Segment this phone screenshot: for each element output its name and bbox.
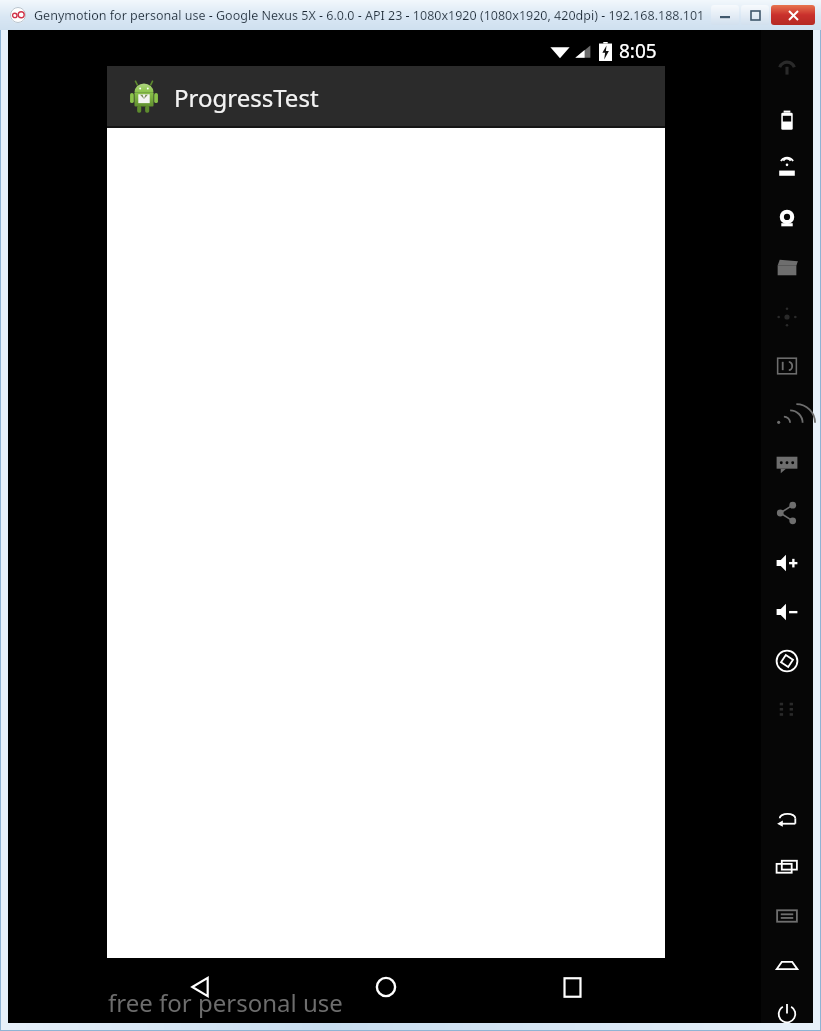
button[interactable]: Recent apps: [479, 958, 665, 1016]
button[interactable]: VOL_DOWN: [771, 596, 803, 628]
staticText: ProgressTest: [174, 81, 319, 114]
button[interactable]: Maximize: [741, 5, 769, 25]
button[interactable]: CAMERA: [771, 202, 803, 234]
button[interactable]: DPAD: [771, 301, 803, 333]
button[interactable]: Minimize: [711, 5, 739, 25]
button[interactable]: HOME: [771, 949, 803, 981]
staticText: Genymotion for personal use - Google Nex…: [34, 7, 705, 24]
button[interactable]: Close: [771, 5, 815, 25]
button[interactable]: PIXEL: [771, 693, 803, 725]
staticText: 8:05: [619, 38, 657, 64]
button[interactable]: BACK: [771, 802, 803, 834]
button[interactable]: ProgressTest: [107, 66, 665, 128]
button[interactable]: SHARE: [771, 497, 803, 529]
button[interactable]: Back: [107, 958, 293, 1016]
button[interactable]: SMS: [771, 448, 803, 480]
button[interactable]: GPS: [771, 153, 803, 185]
button[interactable]: LOGO: [771, 56, 803, 88]
button[interactable]: Home: [293, 958, 479, 1016]
button[interactable]: MENU: [771, 900, 803, 932]
button[interactable]: VOL_UP: [771, 547, 803, 579]
button[interactable]: ID: [771, 350, 803, 382]
button[interactable]: RECENTS: [771, 851, 803, 883]
button[interactable]: VIDEO: [771, 252, 803, 284]
button[interactable]: NETWORK: [771, 398, 803, 430]
button[interactable]: ROTATE: [771, 645, 803, 677]
staticText: free for personal use: [108, 986, 343, 1019]
button[interactable]: BATTERY: [771, 105, 803, 137]
button[interactable]: POWER: [771, 998, 803, 1030]
